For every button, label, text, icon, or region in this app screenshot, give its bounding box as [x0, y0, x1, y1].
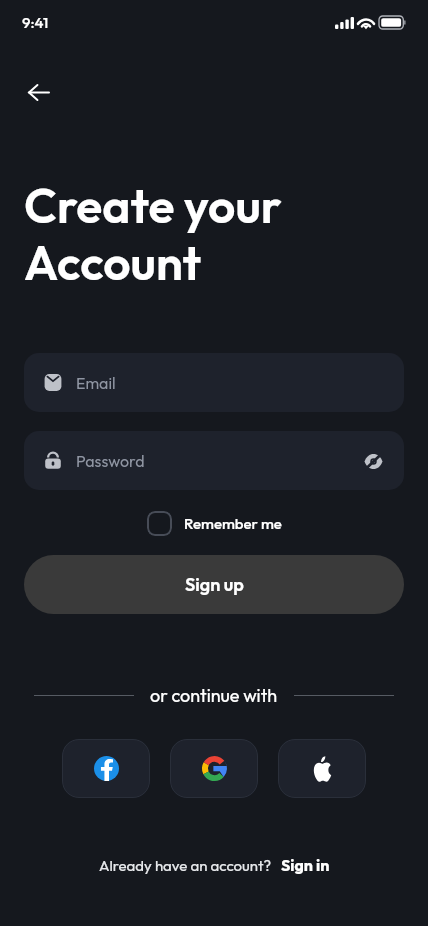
staticText: Already have an account?	[99, 856, 272, 875]
staticText: Sign up	[185, 573, 244, 596]
button[interactable]: Sign up	[24, 555, 404, 614]
staticText: Create your	[24, 175, 282, 235]
staticText: 9:41	[22, 13, 49, 32]
staticText: or continue with	[150, 684, 278, 707]
staticText: Sign in	[281, 855, 330, 875]
button[interactable]: Continue with Facebook	[62, 739, 150, 798]
staticText: Remember me	[184, 514, 282, 533]
button[interactable]: Back	[14, 68, 62, 116]
button[interactable]: Remember me	[147, 507, 282, 540]
button[interactable]: Password	[24, 431, 404, 490]
staticText: Password	[76, 451, 145, 471]
staticText: Email	[76, 373, 116, 393]
button[interactable]: Email	[24, 353, 404, 412]
button[interactable]: Show password	[358, 446, 388, 476]
button[interactable]: Continue with Google	[170, 739, 258, 798]
button[interactable]: Sign in	[281, 855, 330, 875]
staticText: Account	[24, 232, 202, 292]
button[interactable]: Continue with Apple	[278, 739, 366, 798]
